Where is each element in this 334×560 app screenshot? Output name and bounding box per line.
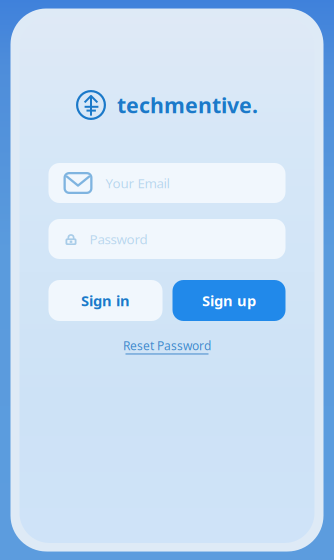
button[interactable]: Password (48, 219, 285, 259)
staticText: Sign in (81, 291, 130, 310)
button[interactable]: Sign in (48, 280, 162, 321)
staticText: Reset Password (123, 337, 211, 353)
staticText: techmentive. (117, 91, 258, 119)
button[interactable]: Reset Password (117, 337, 217, 355)
button[interactable]: Sign up (172, 280, 285, 321)
button[interactable]: Your Email (48, 163, 285, 203)
staticText: Sign up (202, 291, 256, 310)
staticText: Your Email (105, 174, 169, 192)
staticText: Password (89, 230, 147, 248)
